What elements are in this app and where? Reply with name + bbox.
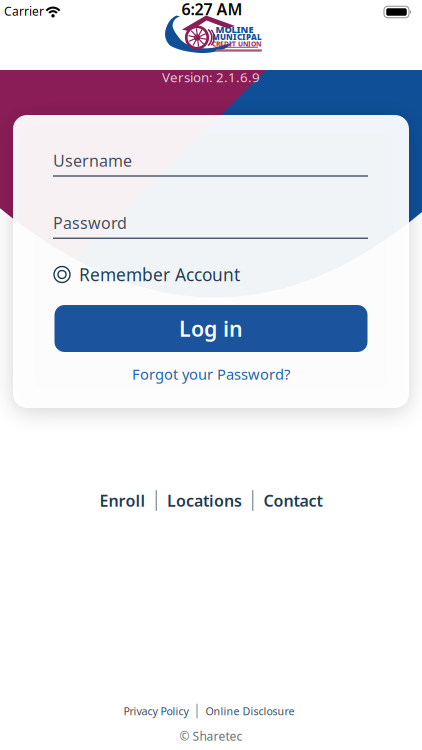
button[interactable]: Forgot your Password? — [132, 364, 290, 384]
staticText: MOLINE — [215, 23, 253, 36]
button[interactable]: Enroll — [100, 490, 146, 511]
button[interactable]: Locations — [167, 490, 242, 511]
button[interactable]: Remember Account — [53, 263, 369, 286]
button[interactable]: Privacy Policy — [123, 704, 188, 718]
staticText: Online Disclosure — [206, 704, 295, 718]
staticText: MUNICIPAL — [212, 32, 262, 42]
staticText: Enroll — [100, 490, 146, 511]
staticText: © Sharetec — [179, 728, 242, 744]
staticText: 6:27 AM — [181, 0, 242, 20]
staticText: Remember Account — [79, 263, 240, 286]
button[interactable]: Username — [53, 152, 368, 184]
staticText: Carrier — [4, 3, 44, 19]
staticText: CREDIT UNION — [212, 40, 261, 48]
button[interactable]: Online Disclosure — [206, 704, 295, 718]
staticText: Log in — [179, 314, 243, 343]
staticText: Version: 2.1.6.9 — [162, 68, 260, 86]
staticText: Username — [53, 150, 132, 171]
button[interactable]: Password — [53, 214, 368, 246]
staticText: Locations — [167, 490, 242, 511]
staticText: Contact — [263, 490, 322, 511]
staticText: Password — [53, 212, 127, 233]
button[interactable]: Log in — [54, 305, 367, 352]
staticText: Privacy Policy — [123, 704, 188, 718]
button[interactable]: Contact — [263, 490, 322, 511]
staticText: Forgot your Password? — [132, 364, 290, 384]
